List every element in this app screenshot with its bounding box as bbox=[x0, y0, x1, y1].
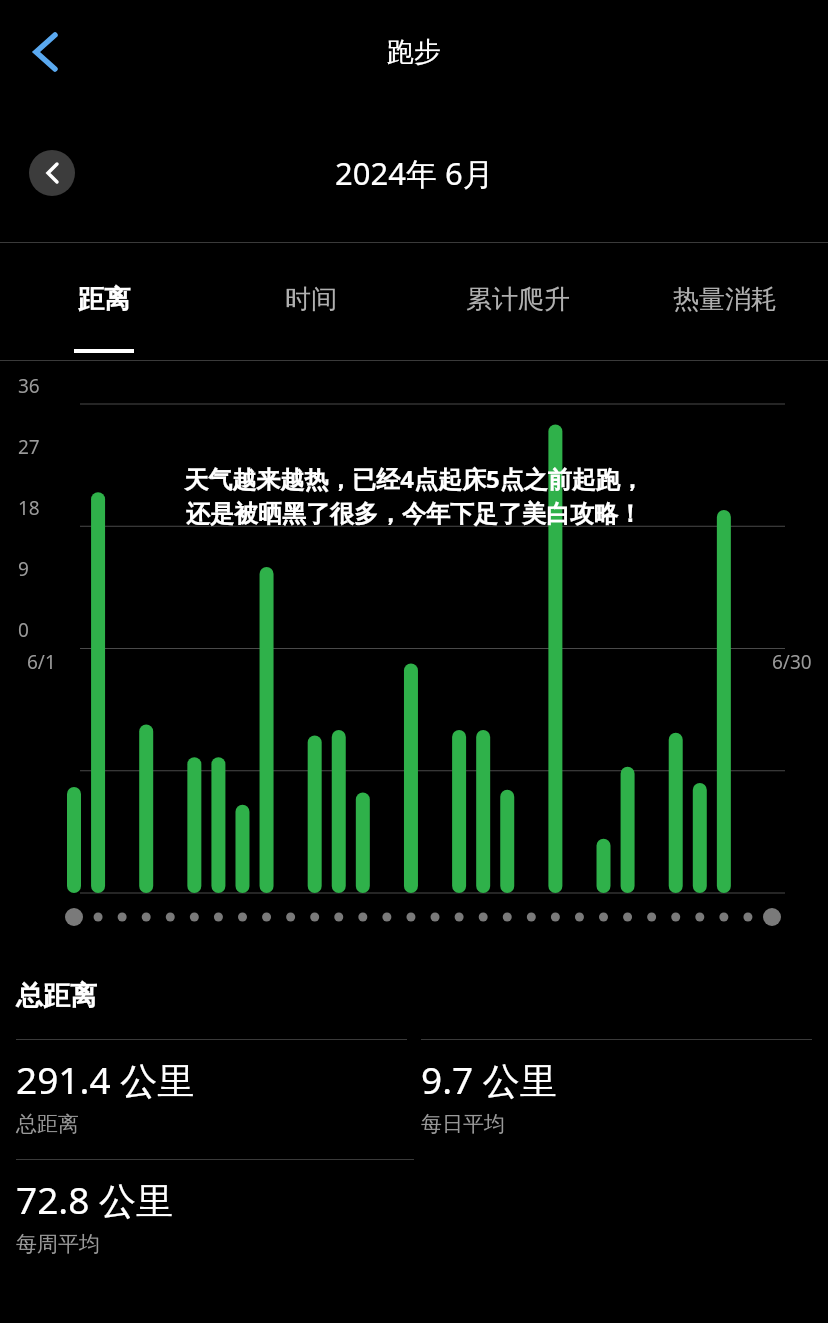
staticText: 热量消耗 bbox=[673, 283, 777, 316]
staticText: 距离 bbox=[78, 283, 130, 316]
staticText: 每周平均 bbox=[16, 1231, 100, 1257]
button[interactable]: 累计爬升 bbox=[414, 243, 621, 360]
staticText: 跑步 bbox=[387, 35, 441, 69]
button[interactable]: 时间 bbox=[207, 243, 414, 360]
staticText: 还是被晒黑了很多，今年下足了美白攻略！ bbox=[186, 499, 642, 529]
staticText: 291.4 公里 bbox=[16, 1054, 195, 1105]
staticText: 总距离 bbox=[16, 1111, 79, 1137]
staticText: 9.7 公里 bbox=[421, 1054, 557, 1105]
button[interactable]: Back bbox=[10, 18, 78, 86]
button[interactable]: 热量消耗 bbox=[621, 243, 828, 360]
staticText: 总距离 bbox=[16, 979, 97, 1013]
button[interactable]: 291.4 公里 bbox=[16, 1039, 407, 1159]
staticText: 9 bbox=[18, 556, 29, 582]
button[interactable]: Previous month bbox=[29, 150, 75, 196]
staticText: 累计爬升 bbox=[466, 283, 570, 316]
staticText: 2024年 6月 bbox=[335, 152, 494, 194]
staticText: 36 bbox=[18, 373, 40, 399]
button[interactable]: 72.8 公里 bbox=[16, 1159, 414, 1279]
staticText: 0 bbox=[18, 617, 29, 643]
staticText: 时间 bbox=[285, 283, 337, 316]
staticText: 27 bbox=[18, 434, 40, 460]
button[interactable]: 距离 bbox=[0, 243, 207, 360]
staticText: 6/30 bbox=[772, 649, 812, 675]
staticText: 18 bbox=[18, 495, 40, 521]
staticText: 6/1 bbox=[27, 649, 56, 675]
staticText: 每日平均 bbox=[421, 1111, 505, 1137]
button[interactable]: 9.7 公里 bbox=[421, 1039, 812, 1159]
staticText: 72.8 公里 bbox=[16, 1174, 174, 1225]
staticText: 天气越来越热，已经4点起床5点之前起跑， bbox=[184, 462, 644, 495]
